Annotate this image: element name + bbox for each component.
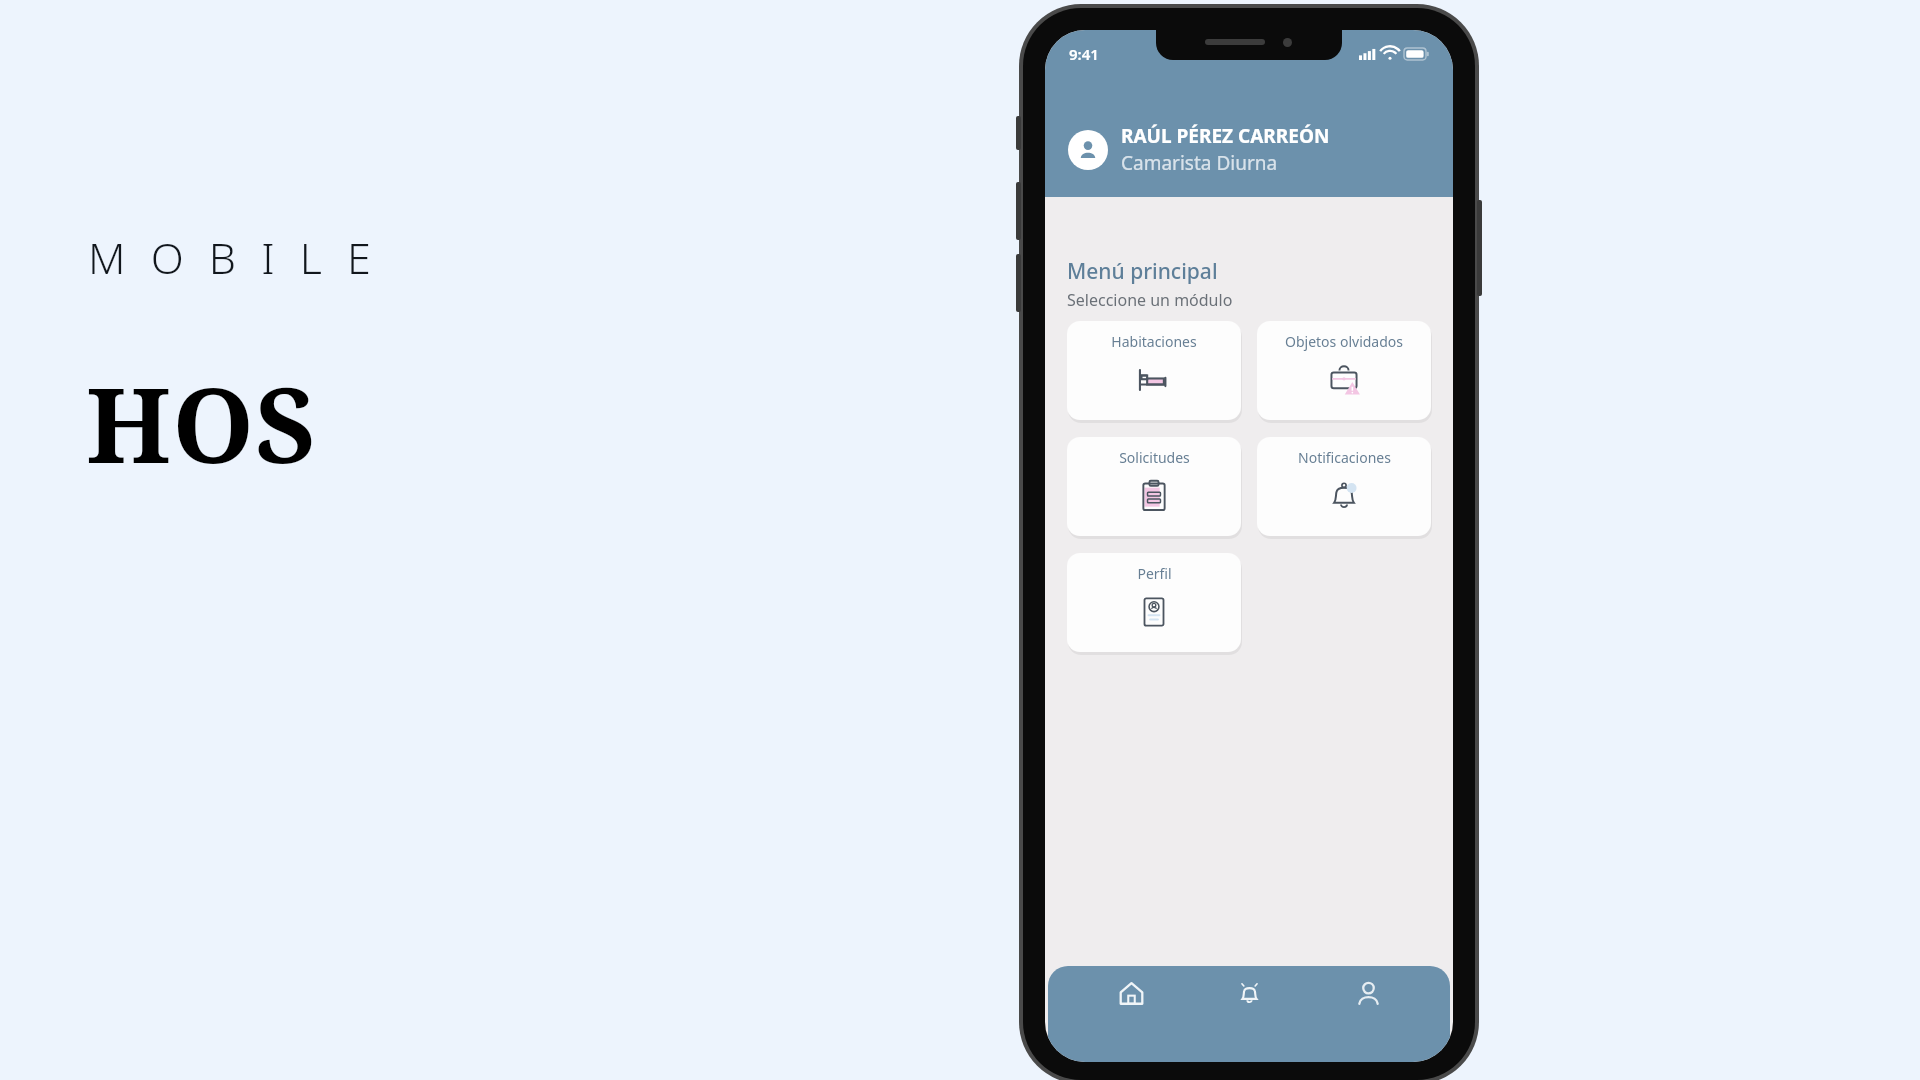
button[interactable]: Notificaciones bbox=[1257, 437, 1431, 536]
staticText: 9:41 bbox=[1069, 44, 1099, 64]
staticText: Perfil bbox=[1137, 564, 1172, 583]
button[interactable]: Notifications bbox=[1213, 980, 1285, 1030]
button[interactable]: Profile bbox=[1332, 980, 1404, 1030]
button[interactable]: Perfil bbox=[1067, 553, 1241, 652]
staticText: Seleccione un módulo bbox=[1067, 289, 1233, 311]
button[interactable]: Objetos olvidados bbox=[1257, 321, 1431, 420]
button[interactable]: Solicitudes bbox=[1067, 437, 1241, 536]
staticText: M O B I L E bbox=[88, 228, 378, 287]
staticText: RAÚL PÉREZ CARREÓN bbox=[1121, 123, 1330, 149]
staticText: Objetos olvidados bbox=[1285, 332, 1403, 351]
button[interactable]: Home bbox=[1095, 980, 1167, 1030]
staticText: Camarista Diurna bbox=[1121, 150, 1278, 176]
staticText: HOS bbox=[86, 352, 317, 494]
button[interactable]: Habitaciones bbox=[1067, 321, 1241, 420]
staticText: Habitaciones bbox=[1111, 332, 1197, 351]
staticText: Menú principal bbox=[1067, 257, 1218, 286]
staticText: Solicitudes bbox=[1119, 448, 1190, 467]
staticText: Notificaciones bbox=[1298, 448, 1391, 467]
